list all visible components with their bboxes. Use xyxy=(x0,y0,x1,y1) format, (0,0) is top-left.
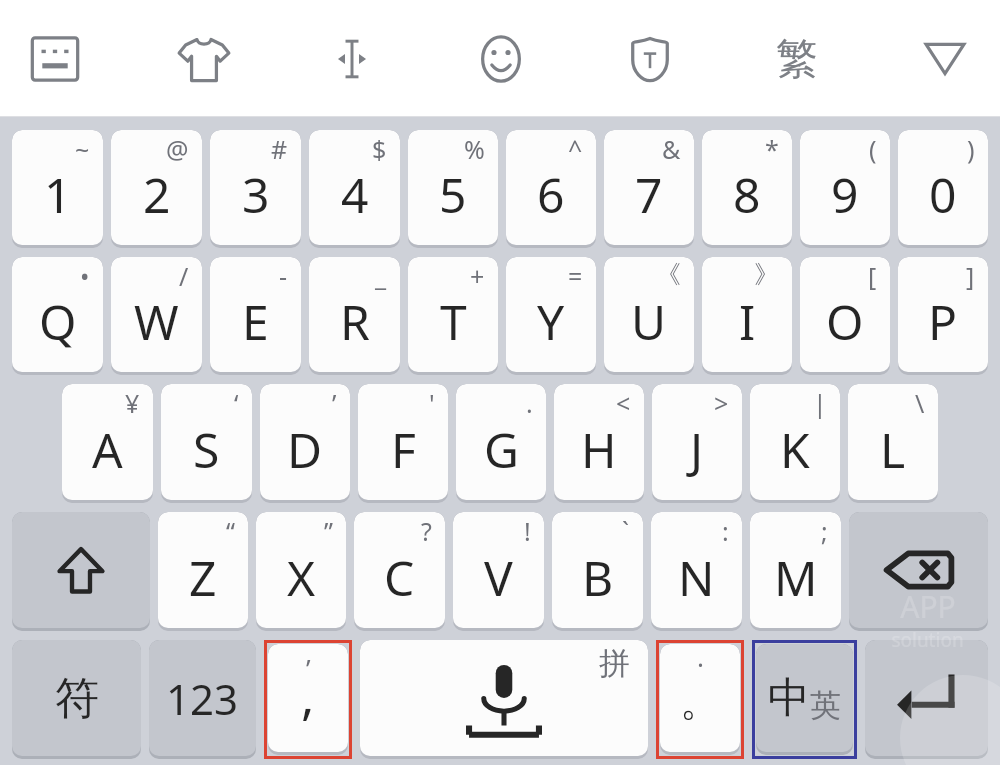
staticText: ^ xyxy=(568,132,583,166)
staticText: M xyxy=(774,545,818,610)
staticText: 6 xyxy=(537,162,565,227)
staticText: 8 xyxy=(733,162,761,227)
button[interactable]: Theme xyxy=(165,20,243,98)
button[interactable]: G xyxy=(456,384,546,500)
button[interactable]: B xyxy=(552,512,643,628)
staticText: < xyxy=(616,386,631,420)
staticText: U xyxy=(631,289,667,354)
button[interactable]: D xyxy=(260,384,350,500)
button[interactable]: U xyxy=(604,257,694,372)
button[interactable]: E xyxy=(210,257,301,372)
button[interactable]: H xyxy=(554,384,644,500)
staticText: 0 xyxy=(929,162,957,227)
button[interactable]: Backspace xyxy=(849,512,988,628)
staticText: : xyxy=(722,514,729,548)
staticText: 7 xyxy=(635,162,663,227)
button[interactable]: 中 xyxy=(756,644,853,752)
button[interactable]: S xyxy=(161,384,252,500)
staticText: Q xyxy=(39,289,77,354)
staticText: ~ xyxy=(75,132,90,166)
button[interactable]: Z xyxy=(158,512,248,628)
button[interactable]: F xyxy=(358,384,448,500)
staticText: 英 xyxy=(810,686,841,725)
staticText: 5 xyxy=(439,162,467,227)
button[interactable]: N xyxy=(651,512,742,628)
staticText: ] xyxy=(966,259,975,293)
button[interactable]: V xyxy=(453,512,544,628)
staticText: [ xyxy=(868,259,877,293)
staticText: ’ xyxy=(332,386,337,420)
button[interactable]: K xyxy=(750,384,840,500)
button[interactable]: 4 xyxy=(309,130,400,245)
staticText: & xyxy=(662,132,681,166)
button[interactable]: 繁 xyxy=(759,21,835,97)
button[interactable]: 符 xyxy=(12,640,141,756)
staticText: ‘ xyxy=(234,386,239,420)
staticText: ’ xyxy=(306,650,311,685)
button[interactable]: 1 xyxy=(12,130,103,245)
staticText: 2 xyxy=(143,162,171,227)
button[interactable]: Text privacy xyxy=(611,20,689,98)
button[interactable]: Shift xyxy=(12,512,150,628)
staticText: + xyxy=(470,259,485,293)
button[interactable]: I xyxy=(702,257,792,372)
button[interactable]: L xyxy=(848,384,938,500)
button[interactable]: 123 xyxy=(149,640,256,756)
staticText: H xyxy=(581,417,617,482)
staticText: Z xyxy=(189,545,217,610)
staticText: # xyxy=(271,132,288,166)
button[interactable]: , xyxy=(268,644,348,752)
button[interactable]: Keyboard layout xyxy=(16,20,94,98)
staticText: . xyxy=(526,386,533,420)
staticText: 9 xyxy=(831,162,859,227)
button[interactable]: Y xyxy=(506,257,596,372)
button[interactable]: C xyxy=(354,512,445,628)
button[interactable]: Q xyxy=(12,257,103,372)
staticText: ¥ xyxy=(125,386,140,420)
other: Enter xyxy=(893,664,961,732)
button[interactable]: X xyxy=(256,512,346,628)
button[interactable]: Emoji xyxy=(462,20,540,98)
button[interactable]: 。 xyxy=(660,644,740,752)
staticText: X xyxy=(287,545,316,610)
staticText: G xyxy=(484,417,519,482)
staticText: Y xyxy=(537,289,565,354)
staticText: ` xyxy=(622,514,630,548)
staticText: ” xyxy=(324,514,333,548)
button[interactable]: Enter xyxy=(865,640,988,756)
button[interactable]: P xyxy=(898,257,988,372)
button[interactable]: A xyxy=(62,384,153,500)
button[interactable]: M xyxy=(750,512,841,628)
staticText: E xyxy=(242,289,269,354)
button[interactable]: Hide keyboard xyxy=(906,20,984,98)
staticText: N xyxy=(678,545,715,610)
staticText: _ xyxy=(375,259,387,293)
button[interactable]: 7 xyxy=(604,130,694,245)
staticText: / xyxy=(179,259,189,293)
staticText: L xyxy=(880,417,906,482)
button[interactable]: R xyxy=(309,257,400,372)
other: Shift xyxy=(52,541,110,599)
staticText: V xyxy=(484,545,513,610)
staticText: F xyxy=(391,417,416,482)
button[interactable]: 8 xyxy=(702,130,792,245)
button[interactable]: 6 xyxy=(506,130,596,245)
staticText: 1 xyxy=(44,162,72,227)
staticText: W xyxy=(134,289,179,354)
button[interactable]: Move cursor xyxy=(313,20,391,98)
button[interactable]: 0 xyxy=(898,130,988,245)
button[interactable]: T xyxy=(408,257,498,372)
staticText: D xyxy=(287,417,323,482)
staticText: J xyxy=(690,417,704,482)
button[interactable]: 9 xyxy=(800,130,890,245)
button[interactable]: O xyxy=(800,257,890,372)
staticText: ' xyxy=(429,386,435,420)
button[interactable]: 3 xyxy=(210,130,301,245)
button[interactable]: Voice input xyxy=(360,640,648,756)
button[interactable]: W xyxy=(111,257,202,372)
staticText: 》 xyxy=(754,259,779,290)
button[interactable]: 2 xyxy=(111,130,202,245)
staticText: * xyxy=(765,132,779,166)
button[interactable]: 5 xyxy=(408,130,498,245)
button[interactable]: J xyxy=(652,384,742,500)
